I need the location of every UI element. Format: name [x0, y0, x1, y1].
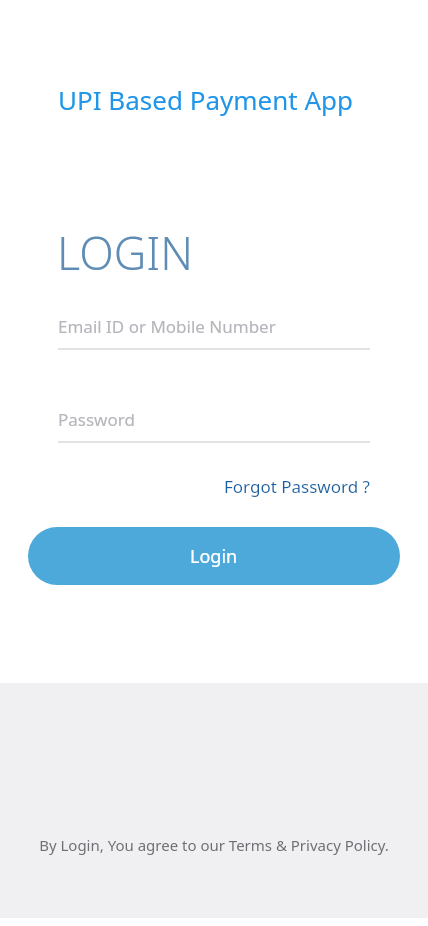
staticText: UPI Based Payment App [58, 82, 354, 117]
staticText: Login [190, 544, 238, 569]
staticText: Forgot Password ? [224, 475, 370, 498]
button[interactable]: Login [28, 527, 400, 585]
staticText: LOGIN [57, 222, 194, 283]
staticText: By Login, You agree to our Terms & Priva… [39, 835, 389, 855]
staticText: Password [58, 408, 135, 431]
button[interactable]: Email ID or Mobile Number [58, 315, 370, 350]
button[interactable]: Password [58, 408, 370, 443]
staticText: Email ID or Mobile Number [58, 315, 276, 338]
button[interactable]: By Login, You agree to our Terms & Priva… [33, 831, 395, 859]
button[interactable]: Forgot Password ? [221, 470, 373, 503]
